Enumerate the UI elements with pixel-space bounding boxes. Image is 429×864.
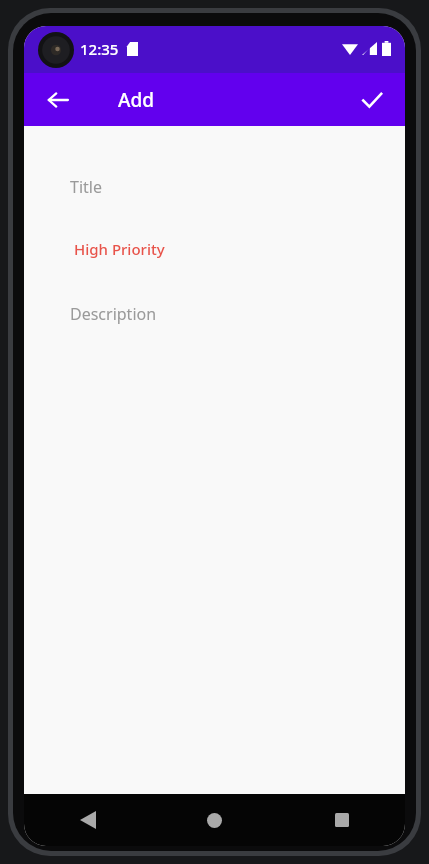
- staticText: Description: [70, 303, 157, 325]
- button[interactable]: Back: [36, 78, 80, 122]
- button[interactable]: High Priority: [24, 224, 405, 274]
- staticText: Title: [70, 176, 102, 198]
- staticText: 12:35: [80, 39, 119, 59]
- button[interactable]: Recent apps: [278, 794, 405, 846]
- button[interactable]: Back: [24, 794, 151, 846]
- button[interactable]: Description: [24, 288, 405, 340]
- button[interactable]: Save: [349, 77, 395, 123]
- staticText: Add: [118, 87, 155, 113]
- staticText: High Priority: [74, 239, 165, 259]
- button[interactable]: Title: [24, 159, 405, 215]
- button[interactable]: Home: [151, 794, 278, 846]
